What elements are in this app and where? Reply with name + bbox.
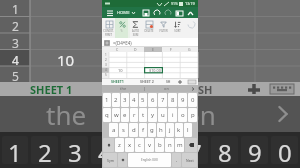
button[interactable]: i — [168, 108, 177, 122]
button[interactable]: y — [148, 108, 157, 122]
button[interactable]: Collapse ribbon — [186, 9, 194, 17]
button[interactable]: on — [133, 96, 266, 132]
button[interactable]: q — [103, 108, 111, 122]
button[interactable]: Comments — [175, 9, 183, 17]
staticText: l — [187, 126, 189, 134]
button[interactable]: m — [175, 138, 184, 152]
button[interactable]: % — [115, 18, 128, 38]
button[interactable]: 8 — [168, 93, 177, 107]
button[interactable]: 9 — [241, 136, 268, 164]
button[interactable]: More suggestions — [188, 85, 198, 92]
button[interactable]: Undo — [153, 9, 161, 17]
button[interactable]: 2 — [31, 136, 58, 164]
button[interactable]: Settings — [118, 153, 127, 167]
button[interactable]: 4 — [130, 93, 138, 107]
button[interactable]: t — [139, 108, 147, 122]
button[interactable]: l — [184, 123, 192, 137]
staticText: Next — [186, 158, 194, 163]
button[interactable]: SHEET 2 — [132, 78, 162, 85]
staticText: F — [170, 47, 172, 52]
button[interactable]: SHEET1 — [102, 78, 132, 85]
button[interactable]: Hide keyboard — [270, 84, 294, 94]
button[interactable]: DELETE — [142, 18, 156, 38]
staticText: 2 — [114, 96, 118, 104]
button[interactable]: 4 — [91, 136, 118, 164]
button[interactable]: G — [180, 47, 198, 52]
button[interactable]: 5 — [121, 136, 148, 164]
button[interactable]: FILTER — [156, 18, 170, 38]
button[interactable]: the — [102, 85, 144, 92]
button[interactable]: SH — [198, 82, 238, 96]
button[interactable]: b — [155, 138, 164, 152]
button[interactable]: Save — [142, 9, 150, 17]
button[interactable]: f — [139, 123, 147, 137]
button[interactable]: 1 — [2, 136, 28, 164]
button[interactable]: Shift — [103, 138, 114, 152]
button[interactable]: k — [175, 123, 183, 137]
button[interactable]: Hide keyboard — [185, 78, 198, 85]
button[interactable]: d — [129, 123, 138, 137]
button[interactable]: 7 — [181, 136, 208, 164]
button[interactable] — [184, 18, 198, 38]
button[interactable]: s — [119, 123, 128, 137]
button[interactable]: the — [0, 96, 132, 132]
button[interactable]: z — [115, 138, 124, 152]
button[interactable]: Backspace — [185, 138, 197, 152]
button[interactable]: w — [112, 108, 120, 122]
button[interactable]: Add sheet — [238, 82, 270, 96]
button[interactable]: F — [162, 47, 180, 52]
button[interactable]: 0 — [188, 93, 197, 107]
staticText: x — [128, 141, 132, 149]
button[interactable]: Redo — [164, 9, 172, 17]
staticText: 10 — [57, 50, 75, 67]
button[interactable]: 6 — [151, 136, 178, 164]
button[interactable]: 5 — [139, 93, 147, 107]
button[interactable]: 7 — [158, 93, 167, 107]
button[interactable]: CONDIT. FRMT — [102, 18, 115, 38]
button[interactable]: 9 — [178, 93, 187, 107]
button[interactable]: 8 — [211, 136, 238, 164]
button[interactable]: u — [158, 108, 167, 122]
button[interactable]: E — [144, 47, 162, 52]
button[interactable]: 1 — [103, 93, 111, 107]
button[interactable]: a — [109, 123, 118, 137]
button[interactable]: AUTO SUM — [128, 18, 142, 38]
button[interactable]: 0 — [271, 136, 298, 164]
button[interactable]: Next — [182, 153, 197, 167]
button[interactable]: o — [178, 108, 187, 122]
staticText: i — [172, 111, 174, 119]
button[interactable]: 6 — [148, 93, 157, 107]
staticText: 6 — [151, 96, 155, 104]
staticText: 3 — [123, 96, 127, 104]
button[interactable]: Add sheet — [175, 78, 185, 85]
staticText: the — [46, 97, 87, 132]
button[interactable]: on — [145, 85, 188, 92]
button[interactable]: g — [148, 123, 156, 137]
button[interactable]: D — [126, 47, 144, 52]
button[interactable]: SORT — [170, 18, 184, 38]
button[interactable]: x — [125, 138, 134, 152]
button[interactable]: HOME — [117, 10, 135, 16]
button[interactable]: h — [157, 123, 165, 137]
button[interactable]: Sym — [103, 153, 117, 167]
staticText: 10 — [118, 68, 123, 73]
button[interactable]: More suggestions — [266, 96, 300, 132]
button[interactable]: Menu — [106, 9, 113, 16]
button[interactable]: v — [145, 138, 154, 152]
button[interactable]: j — [166, 123, 174, 137]
button[interactable]: 3 — [121, 93, 129, 107]
button[interactable]: p — [188, 108, 197, 122]
button[interactable]: SHEET 1 — [0, 82, 102, 96]
button[interactable]: c — [135, 138, 144, 152]
button[interactable] — [104, 40, 110, 46]
button[interactable]: r — [130, 108, 138, 122]
button[interactable]: e — [121, 108, 129, 122]
button[interactable]: C — [109, 47, 126, 52]
button[interactable]: n — [165, 138, 174, 152]
button[interactable]: 2 — [112, 93, 120, 107]
button[interactable]: . — [172, 153, 181, 167]
staticText: the — [120, 86, 127, 91]
button[interactable]: SH — [162, 78, 175, 85]
button[interactable]: 3 — [61, 136, 88, 164]
button[interactable]: English (UK) — [128, 153, 171, 167]
